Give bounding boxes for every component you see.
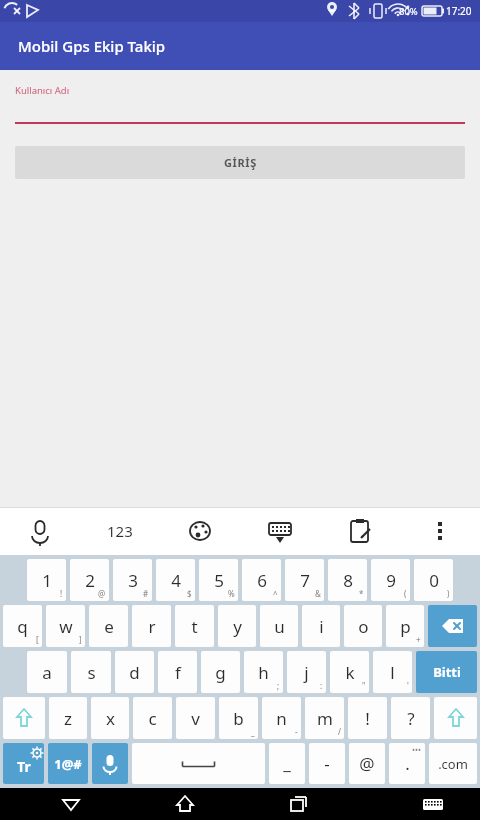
button[interactable]: g — [201, 651, 240, 693]
staticText: d — [129, 661, 140, 684]
button[interactable]: d — [115, 651, 154, 693]
button[interactable]: 0 — [414, 559, 453, 601]
staticText: s — [87, 661, 96, 684]
button[interactable]: Voice input — [0, 507, 80, 555]
button[interactable]: 1@# — [48, 743, 88, 784]
button[interactable]: q — [3, 605, 42, 647]
button[interactable]: m — [305, 697, 344, 739]
button[interactable]: 123 — [80, 507, 160, 555]
staticText: 7 — [300, 569, 310, 592]
button[interactable]: 5 — [199, 559, 238, 601]
button[interactable]: Shift — [434, 697, 477, 739]
staticText: 2 — [85, 569, 95, 592]
button[interactable]: Voice input — [92, 743, 128, 784]
button[interactable]: b — [219, 697, 258, 739]
staticText: e — [104, 615, 114, 638]
staticText: 123 — [107, 521, 133, 541]
staticText: ! — [365, 707, 370, 730]
button[interactable]: p — [386, 605, 424, 647]
button[interactable]: 4 — [156, 559, 195, 601]
button[interactable]: Emoji and themes — [160, 507, 240, 555]
staticText: / — [338, 726, 341, 737]
staticText: Tr — [17, 757, 31, 776]
button[interactable]: Clipboard — [320, 507, 400, 555]
button[interactable]: Done — [416, 651, 477, 693]
staticText: ] — [79, 634, 82, 645]
button[interactable]: Back — [55, 788, 87, 820]
button[interactable]: k — [330, 651, 369, 693]
staticText: 3 — [128, 569, 138, 592]
button[interactable]: @ — [349, 743, 385, 784]
button[interactable]: t — [175, 605, 214, 647]
button[interactable]: _ — [269, 743, 305, 784]
staticText: i — [319, 615, 324, 638]
staticText: p — [400, 615, 411, 638]
staticText: ? — [407, 707, 415, 730]
button[interactable]: Backspace — [428, 605, 477, 647]
staticText: Bitti — [433, 663, 461, 681]
button[interactable]: 9 — [371, 559, 410, 601]
staticText: f — [175, 661, 181, 684]
staticText: ; — [277, 680, 280, 691]
button[interactable]: 2 — [70, 559, 109, 601]
button[interactable]: f — [158, 651, 197, 693]
staticText: @ — [359, 752, 375, 775]
button[interactable]: 8 — [328, 559, 367, 601]
button[interactable]: a — [27, 651, 67, 693]
button[interactable]: - — [309, 743, 345, 784]
button[interactable]: i — [302, 605, 340, 647]
staticText: ••• — [412, 744, 422, 755]
button[interactable]: w — [46, 605, 85, 647]
button[interactable]: e — [89, 605, 128, 647]
button[interactable]: ? — [391, 697, 430, 739]
button[interactable]: z — [49, 697, 87, 739]
button[interactable]: n — [262, 697, 301, 739]
button[interactable]: Keyboard settings — [240, 507, 320, 555]
button[interactable]: l — [373, 651, 412, 693]
button[interactable]: Home — [169, 788, 201, 820]
button[interactable]: 1 — [27, 559, 66, 601]
staticText: ) — [447, 588, 450, 599]
staticText: 5 — [214, 569, 224, 592]
button[interactable]: . — [389, 743, 425, 784]
button[interactable]: 7 — [285, 559, 324, 601]
button[interactable]: ! — [348, 697, 387, 739]
staticText: . — [405, 752, 410, 775]
staticText: v — [191, 707, 200, 730]
staticText: _ — [283, 752, 291, 775]
staticText: - — [295, 726, 298, 737]
staticText: a — [42, 661, 52, 684]
staticText: _ — [251, 726, 255, 737]
button[interactable]: Switch keyboard — [417, 788, 449, 820]
button[interactable]: u — [260, 605, 298, 647]
button[interactable]: Language — [3, 743, 44, 784]
button[interactable]: v — [176, 697, 215, 739]
button[interactable]: j — [287, 651, 326, 693]
button[interactable]: s — [71, 651, 111, 693]
button[interactable]: r — [132, 605, 171, 647]
staticText: k — [345, 661, 355, 684]
button[interactable]: More options — [400, 507, 480, 555]
button[interactable]: GİRİŞ — [15, 146, 465, 179]
button[interactable]: .com — [429, 743, 477, 784]
button[interactable]: 6 — [242, 559, 281, 601]
button[interactable]: x — [91, 697, 129, 739]
staticText: + — [416, 634, 421, 645]
button[interactable]: y — [218, 605, 256, 647]
button[interactable]: h — [244, 651, 283, 693]
button[interactable]: Space — [132, 743, 265, 784]
staticText: ' — [407, 680, 409, 691]
button[interactable]: 3 — [113, 559, 152, 601]
button[interactable]: Shift — [3, 697, 45, 739]
staticText: b — [233, 707, 244, 730]
staticText: 8 — [343, 569, 353, 592]
staticText: m — [317, 707, 333, 730]
button[interactable]: c — [133, 697, 172, 739]
staticText: ( — [404, 588, 407, 599]
staticText: % — [228, 588, 235, 599]
button[interactable]: Recent apps — [283, 788, 315, 820]
staticText: 17:20 — [446, 4, 472, 18]
staticText: z — [64, 707, 72, 730]
staticText: y — [233, 615, 242, 638]
button[interactable]: o — [344, 605, 382, 647]
